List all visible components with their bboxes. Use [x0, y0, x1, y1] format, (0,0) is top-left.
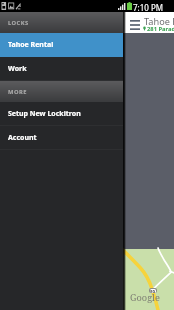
- staticText: Setup New Lockitron: [8, 109, 81, 119]
- staticText: 281 Paradise Dr: [147, 25, 174, 33]
- button[interactable]: Work: [0, 57, 123, 81]
- staticText: 89: [150, 289, 156, 293]
- button[interactable]: Open navigation drawer: [126, 16, 144, 33]
- staticText: Work: [8, 64, 27, 74]
- button[interactable]: Setup New Lockitron: [0, 102, 123, 126]
- staticText: Tahoe Rental: [8, 40, 54, 50]
- staticText: Account: [8, 133, 37, 143]
- button[interactable]: Tahoe Rental: [0, 33, 123, 57]
- staticText: Tahoe Rental: [144, 15, 174, 28]
- staticText: LOCKS: [8, 19, 29, 27]
- button[interactable]: Account: [0, 126, 123, 150]
- staticText: Google: [130, 291, 160, 304]
- staticText: MORE: [8, 88, 27, 96]
- staticText: 7:10 PM: [133, 2, 164, 13]
